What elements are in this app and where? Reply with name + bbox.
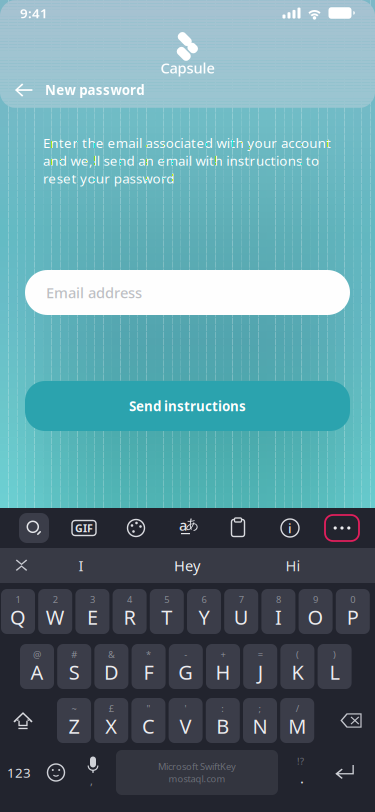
staticText: / bbox=[296, 702, 299, 715]
staticText: N bbox=[252, 713, 267, 739]
button[interactable]: Info bbox=[268, 508, 312, 548]
staticText: 7 bbox=[239, 593, 244, 606]
staticText: 8 bbox=[276, 593, 281, 606]
button[interactable]: Return bbox=[323, 750, 367, 795]
staticText: Q bbox=[10, 604, 26, 630]
button[interactable]: Send instructions bbox=[25, 381, 350, 431]
staticText: Send instructions bbox=[129, 397, 246, 415]
staticText: ~ bbox=[71, 702, 76, 715]
staticText: S bbox=[69, 659, 80, 685]
staticText: 6 bbox=[201, 593, 206, 606]
button[interactable]: 9 bbox=[299, 589, 333, 634]
staticText: . bbox=[300, 768, 304, 787]
button[interactable]: ; bbox=[243, 698, 277, 743]
staticText: L bbox=[330, 659, 340, 685]
staticText: Hey bbox=[174, 556, 200, 575]
button[interactable]: £ bbox=[94, 698, 128, 743]
button[interactable]: ~ bbox=[57, 698, 91, 743]
button[interactable]: Clipboard bbox=[216, 508, 260, 548]
staticText: 3 bbox=[90, 593, 95, 606]
button[interactable]: !? bbox=[284, 750, 324, 795]
button[interactable]: ( bbox=[280, 644, 314, 689]
button[interactable]: 0 bbox=[336, 589, 370, 634]
staticText: 4 bbox=[127, 593, 132, 606]
button[interactable]: GIF bbox=[62, 508, 106, 548]
button[interactable]: ' bbox=[169, 698, 203, 743]
staticText: = bbox=[258, 648, 263, 661]
staticText: 0 bbox=[350, 593, 355, 606]
staticText: T bbox=[161, 604, 172, 630]
button[interactable]: : bbox=[206, 698, 240, 743]
button[interactable]: " bbox=[131, 698, 165, 743]
staticText: O bbox=[308, 604, 324, 630]
staticText: i bbox=[288, 519, 292, 537]
button[interactable]: Email address bbox=[25, 270, 350, 315]
staticText: £ bbox=[109, 702, 114, 715]
button[interactable]: 7 bbox=[224, 589, 258, 634]
staticText: M bbox=[288, 713, 306, 739]
button[interactable]: Back bbox=[7, 74, 41, 106]
staticText: @ bbox=[33, 648, 41, 661]
button[interactable]: ) bbox=[318, 644, 352, 689]
staticText: あ bbox=[185, 516, 199, 532]
staticText: mostaql.com bbox=[168, 772, 225, 785]
staticText: New password bbox=[45, 81, 144, 99]
staticText: B bbox=[216, 713, 229, 739]
button[interactable]: - bbox=[169, 644, 203, 689]
staticText: ; bbox=[258, 702, 261, 715]
button[interactable]: Emoji bbox=[36, 750, 76, 795]
staticText: I bbox=[78, 556, 83, 575]
staticText: W bbox=[46, 604, 65, 630]
button[interactable]: 3 bbox=[75, 589, 109, 634]
staticText: H bbox=[215, 659, 230, 685]
staticText: Microsoft SwiftKey bbox=[158, 760, 236, 772]
button[interactable]: Space bbox=[116, 750, 278, 795]
staticText: 9:41 bbox=[20, 4, 48, 22]
staticText: D bbox=[104, 659, 119, 685]
button[interactable]: # bbox=[57, 644, 91, 689]
button[interactable]: Collapse bbox=[4, 548, 40, 583]
button[interactable]: Search bbox=[12, 508, 56, 548]
staticText: Enter the email associated with your acc… bbox=[43, 134, 331, 187]
staticText: + bbox=[220, 648, 225, 661]
staticText: I bbox=[275, 604, 282, 630]
staticText: 1 bbox=[15, 593, 20, 606]
button[interactable]: 8 bbox=[261, 589, 295, 634]
button[interactable]: More bbox=[320, 508, 364, 548]
button[interactable]: Hi bbox=[242, 548, 344, 583]
staticText: * bbox=[146, 648, 151, 661]
button[interactable]: 6 bbox=[187, 589, 221, 634]
staticText: J bbox=[258, 659, 263, 685]
staticText: F bbox=[144, 659, 154, 685]
button[interactable]: Voice input bbox=[73, 750, 113, 795]
staticText: GIF bbox=[75, 521, 93, 535]
button[interactable]: 2 bbox=[38, 589, 72, 634]
button[interactable]: 123 bbox=[0, 750, 41, 795]
staticText: " bbox=[146, 702, 150, 715]
staticText: R bbox=[124, 604, 136, 630]
staticText: Hi bbox=[285, 556, 300, 575]
button[interactable]: = bbox=[243, 644, 277, 689]
staticText: U bbox=[234, 604, 249, 630]
staticText: 2 bbox=[53, 593, 58, 606]
button[interactable]: * bbox=[132, 644, 166, 689]
button[interactable]: Delete bbox=[329, 698, 373, 743]
button[interactable]: 5 bbox=[150, 589, 184, 634]
staticText: ' bbox=[185, 702, 187, 715]
button[interactable]: Shift bbox=[1, 698, 45, 743]
button[interactable]: Themes bbox=[114, 508, 158, 548]
button[interactable]: + bbox=[206, 644, 240, 689]
button[interactable]: I bbox=[30, 548, 132, 583]
staticText: C bbox=[142, 713, 155, 739]
staticText: A bbox=[30, 659, 43, 685]
button[interactable]: 4 bbox=[113, 589, 147, 634]
button[interactable]: Translate bbox=[166, 508, 210, 548]
button[interactable]: / bbox=[280, 698, 314, 743]
staticText: Z bbox=[68, 713, 79, 739]
button[interactable]: & bbox=[94, 644, 128, 689]
staticText: & bbox=[108, 648, 115, 661]
button[interactable]: 1 bbox=[1, 589, 35, 634]
button[interactable]: @ bbox=[20, 644, 54, 689]
button[interactable]: Hey bbox=[136, 548, 238, 583]
staticText: - bbox=[184, 648, 187, 661]
